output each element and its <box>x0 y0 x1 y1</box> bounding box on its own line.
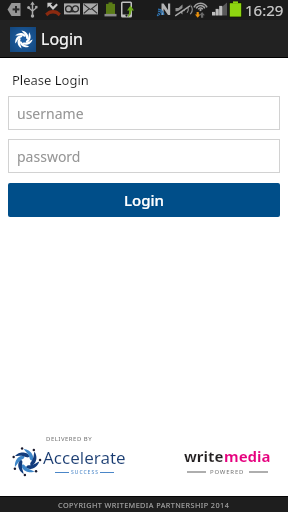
staticText: 16:29 <box>245 0 284 20</box>
staticText: COPYRIGHT WRITEMEDIA PARTNERSHIP 2014 <box>58 500 230 510</box>
button[interactable]: Login <box>8 183 280 217</box>
staticText: POWERED <box>210 468 245 476</box>
staticText: password <box>17 147 81 166</box>
button[interactable]: password <box>8 139 280 173</box>
staticText: media <box>224 446 271 466</box>
staticText: Login <box>41 28 83 50</box>
button[interactable]: App logo <box>10 27 36 52</box>
staticText: Login <box>124 190 164 210</box>
staticText: SUCCESS <box>71 469 99 476</box>
staticText: username <box>17 104 84 123</box>
staticText: write <box>184 446 224 466</box>
staticText: DELIVERED BY <box>46 435 93 443</box>
staticText: Please Login <box>12 71 89 89</box>
button[interactable]: username <box>8 96 280 130</box>
staticText: Accelerate <box>43 446 126 469</box>
